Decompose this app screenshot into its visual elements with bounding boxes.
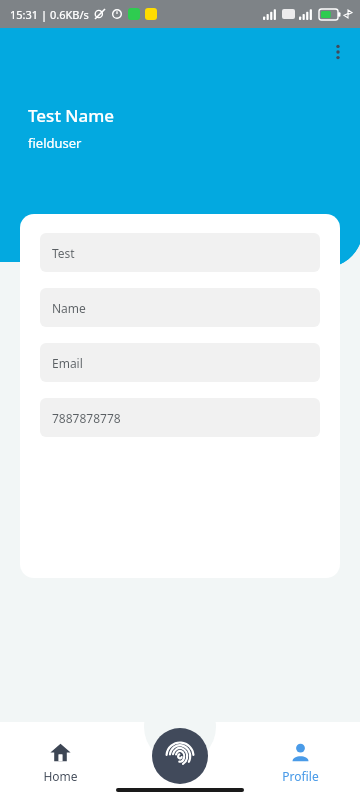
button[interactable]: 7887878778 bbox=[40, 398, 320, 437]
staticText: fielduser bbox=[28, 134, 82, 152]
button[interactable]: Email bbox=[40, 343, 320, 382]
staticText: Test bbox=[52, 245, 75, 261]
button[interactable]: Test bbox=[40, 233, 320, 272]
button[interactable]: Profile bbox=[240, 736, 360, 790]
button[interactable]: Fingerprint scan bbox=[152, 728, 208, 784]
button[interactable]: Name bbox=[40, 288, 320, 327]
staticText: Profile bbox=[282, 768, 319, 784]
staticText: Name bbox=[52, 300, 86, 316]
staticText: 7887878778 bbox=[52, 410, 121, 426]
button[interactable]: Home bbox=[0, 736, 120, 790]
staticText: 15:31 | 0.6KB/s bbox=[10, 7, 89, 22]
staticText: Home bbox=[43, 768, 78, 784]
staticText: Test Name bbox=[28, 104, 115, 127]
button[interactable]: More options bbox=[322, 36, 354, 68]
staticText: Email bbox=[52, 355, 83, 371]
